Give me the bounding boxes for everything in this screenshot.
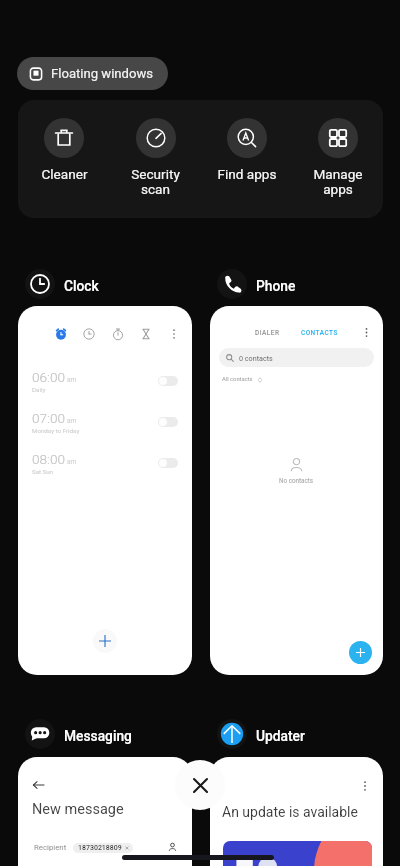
staticText: Phone: [256, 278, 296, 294]
button[interactable]: CONTACTS: [301, 329, 338, 337]
staticText: An update is available: [222, 804, 358, 820]
staticText: 06:00: [32, 369, 66, 385]
staticText: Clock: [64, 278, 99, 294]
button[interactable]: Toggle alarm: [158, 376, 178, 386]
button[interactable]: Stopwatch: [112, 328, 124, 340]
button[interactable]: Contacts: [167, 842, 178, 853]
button[interactable]: DIALER: [255, 329, 280, 337]
button[interactable]: Add alarm: [93, 629, 117, 653]
button[interactable]: More options: [210, 757, 383, 866]
staticText: Sat Sun: [32, 468, 54, 475]
staticText: Floating windows: [51, 66, 154, 81]
button[interactable]: Back: [32, 778, 46, 792]
staticText: All contacts: [222, 376, 253, 383]
button[interactable]: Updater: [217, 718, 305, 752]
button[interactable]: Close: [175, 760, 225, 810]
button[interactable]: World clock: [83, 328, 95, 340]
button[interactable]: Toggle alarm: [158, 417, 178, 427]
button[interactable]: Messaging: [25, 718, 132, 752]
button[interactable]: DIALER: [210, 306, 383, 675]
staticText: Updater: [256, 728, 305, 744]
staticText: Messaging: [64, 728, 132, 744]
staticText: Recipient: [34, 843, 67, 852]
button[interactable]: Cleaner: [18, 118, 110, 182]
staticText: 07:00: [32, 410, 66, 426]
staticText: New message: [32, 801, 124, 818]
button[interactable]: 18730218809: [73, 843, 133, 853]
button[interactable]: Find apps: [201, 118, 292, 182]
staticText: Cleaner: [41, 166, 88, 182]
button[interactable]: Alarm: [55, 328, 67, 340]
button[interactable]: Toggle alarm: [158, 458, 178, 468]
button[interactable]: Phone: [217, 268, 296, 302]
staticText: Daily: [32, 386, 46, 393]
staticText: Monday to Friday: [32, 427, 80, 434]
button[interactable]: 06:00: [18, 360, 192, 401]
staticText: Security scan: [131, 166, 180, 198]
button[interactable]: Timer: [140, 328, 152, 340]
staticText: Find apps: [217, 166, 277, 182]
button[interactable]: More options: [168, 328, 180, 340]
staticText: 0 contacts: [239, 354, 273, 362]
button[interactable]: More options: [359, 780, 371, 792]
staticText: am: [67, 376, 77, 384]
button[interactable]: Back: [18, 757, 192, 866]
button[interactable]: Alarm: [18, 306, 192, 675]
button[interactable]: Security scan: [110, 118, 201, 198]
staticText: 18730218809: [78, 844, 122, 852]
button[interactable]: 0 contacts: [219, 348, 374, 367]
button[interactable]: Manage apps: [292, 118, 383, 198]
button[interactable]: 07:00: [18, 401, 192, 442]
staticText: 08:00: [32, 451, 66, 467]
staticText: am: [67, 417, 77, 425]
staticText: am: [67, 458, 77, 466]
button[interactable]: 08:00: [18, 442, 192, 483]
staticText: Manage apps: [313, 166, 363, 198]
button[interactable]: Floating windows: [17, 57, 168, 90]
staticText: No contacts: [279, 477, 314, 484]
button[interactable]: More options: [361, 327, 372, 338]
button[interactable]: Clock: [25, 268, 99, 302]
button[interactable]: Add contact: [349, 641, 372, 664]
